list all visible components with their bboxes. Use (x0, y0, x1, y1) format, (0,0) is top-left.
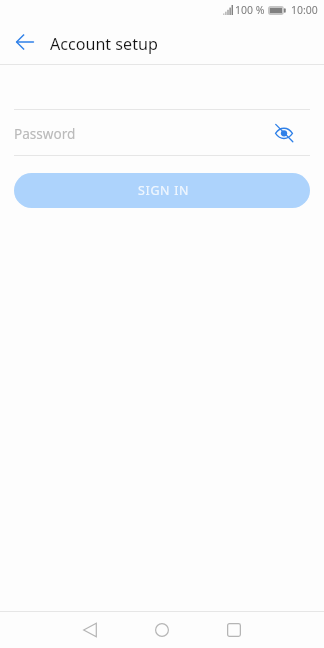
button[interactable]: Back (3, 20, 47, 64)
staticText: Account setup (50, 33, 158, 55)
button[interactable]: Home (140, 611, 184, 648)
staticText: Password (14, 124, 76, 143)
staticText: 100 % (235, 3, 265, 17)
button[interactable]: Show password (270, 119, 298, 147)
staticText: SIGN IN (138, 182, 190, 199)
button[interactable]: Back (68, 611, 112, 648)
button[interactable]: SIGN IN (14, 173, 310, 208)
staticText: 10:00 (291, 3, 318, 17)
button[interactable]: Recent apps (212, 611, 256, 648)
